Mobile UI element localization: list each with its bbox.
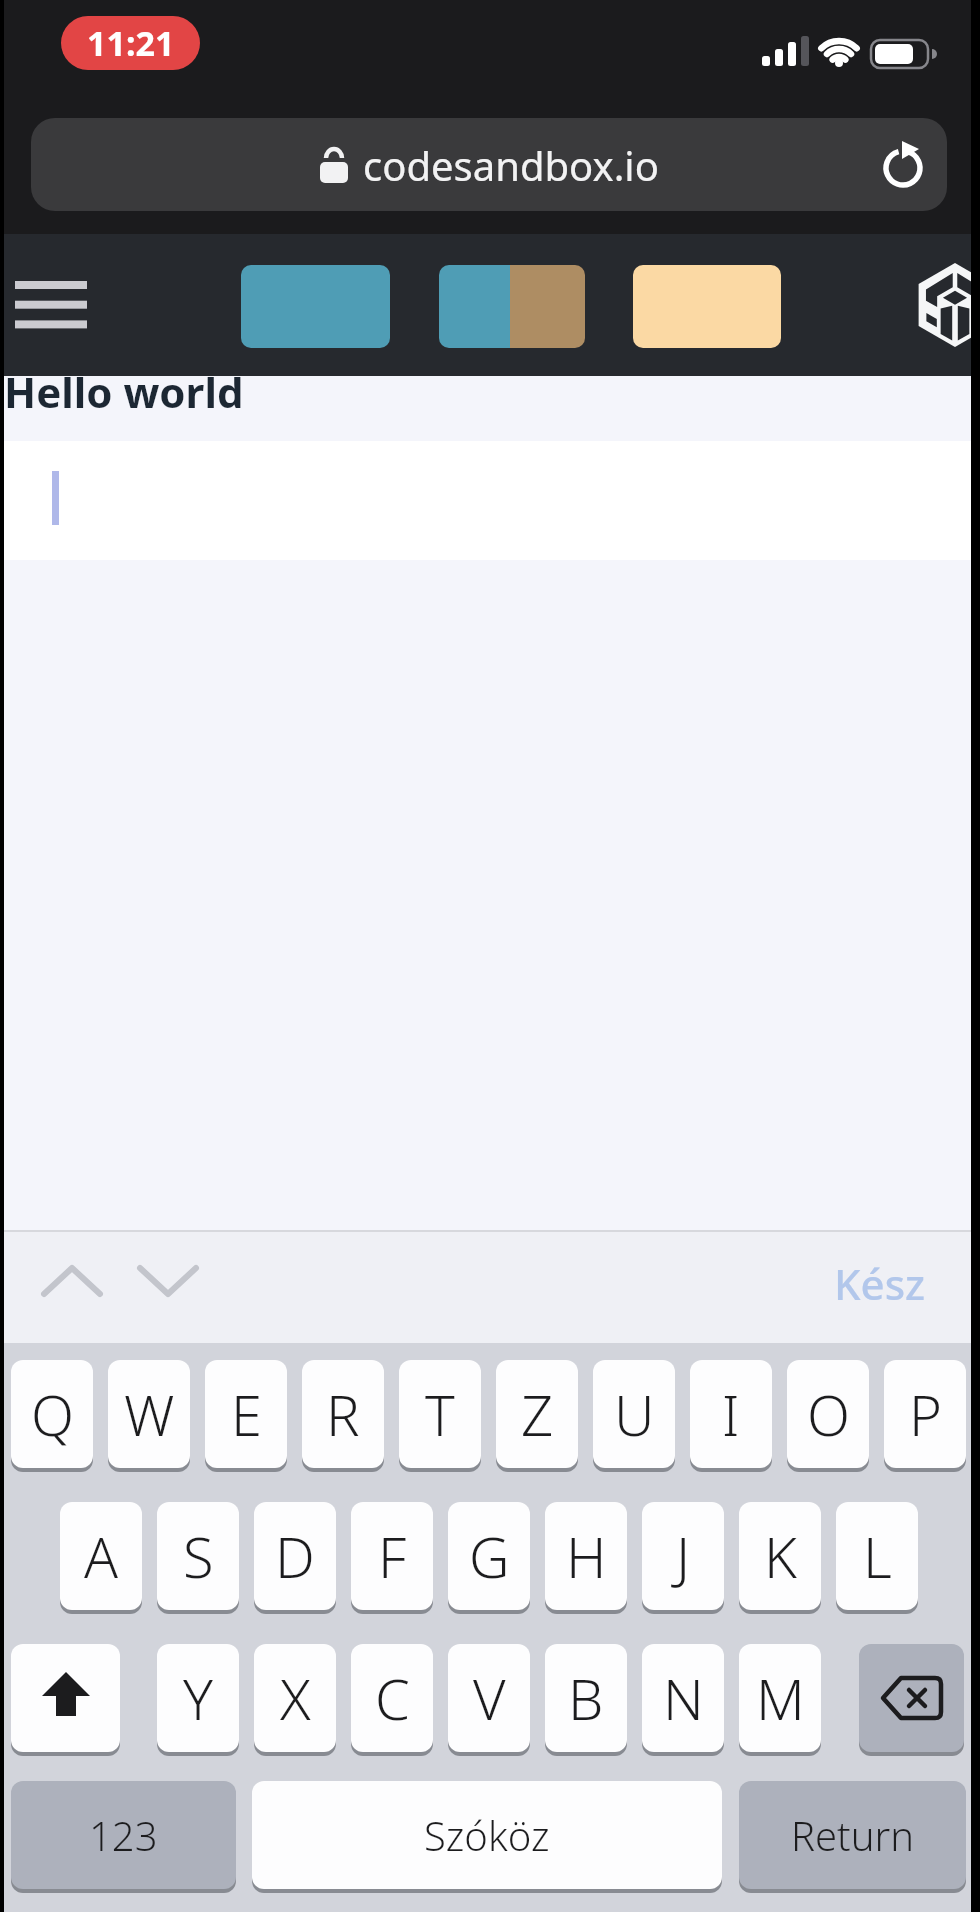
button[interactable] (241, 265, 390, 348)
staticText: 11:21 (87, 20, 175, 66)
button[interactable]: M (739, 1644, 821, 1752)
button[interactable] (633, 265, 781, 348)
button[interactable]: R (302, 1360, 384, 1468)
button[interactable]: N (642, 1644, 724, 1752)
button[interactable]: A (60, 1502, 142, 1610)
button[interactable]: U (593, 1360, 675, 1468)
staticText: X (280, 1660, 311, 1736)
staticText: T (425, 1376, 455, 1452)
button[interactable] (859, 1644, 964, 1752)
button[interactable]: Kész (812, 1248, 948, 1318)
staticText: I (722, 1376, 740, 1452)
button[interactable]: T (399, 1360, 481, 1468)
button[interactable]: D (254, 1502, 336, 1610)
button[interactable] (130, 1252, 206, 1312)
button[interactable] (878, 139, 930, 191)
staticText: R (326, 1376, 360, 1452)
button[interactable]: H (545, 1502, 627, 1610)
button[interactable] (913, 263, 980, 347)
button[interactable]: Return (739, 1781, 966, 1889)
button[interactable]: K (739, 1502, 821, 1610)
staticText: N (663, 1660, 704, 1736)
button[interactable]: 123 (11, 1781, 236, 1889)
button[interactable]: B (545, 1644, 627, 1752)
button[interactable] (0, 441, 971, 560)
button[interactable]: J (642, 1502, 724, 1610)
button[interactable]: S (157, 1502, 239, 1610)
staticText: W (124, 1376, 175, 1452)
button[interactable]: V (448, 1644, 530, 1752)
staticText: U (614, 1376, 655, 1452)
staticText: C (375, 1660, 410, 1736)
button[interactable] (439, 265, 585, 348)
button[interactable]: C (351, 1644, 433, 1752)
staticText: G (469, 1518, 510, 1594)
staticText: K (764, 1518, 797, 1594)
button[interactable]: X (254, 1644, 336, 1752)
staticText: M (756, 1660, 805, 1736)
button[interactable]: codesandbox.io (31, 118, 947, 211)
staticText: J (676, 1518, 691, 1594)
button[interactable]: W (108, 1360, 190, 1468)
staticText: P (909, 1376, 942, 1452)
button[interactable]: O (787, 1360, 869, 1468)
button[interactable]: Q (11, 1360, 93, 1468)
staticText: Hello world (4, 363, 244, 420)
button[interactable]: F (351, 1502, 433, 1610)
staticText: Q (31, 1376, 74, 1452)
button[interactable]: L (836, 1502, 918, 1610)
button[interactable]: Szóköz (252, 1781, 722, 1889)
button[interactable] (8, 272, 96, 338)
button[interactable]: I (690, 1360, 772, 1468)
staticText: B (568, 1660, 604, 1736)
button[interactable] (11, 1644, 120, 1752)
button[interactable]: P (884, 1360, 966, 1468)
button[interactable]: Z (496, 1360, 578, 1468)
staticText: Return (791, 1808, 914, 1862)
staticText: Szóköz (424, 1808, 550, 1862)
staticText: Kész (834, 1255, 926, 1312)
staticText: S (183, 1518, 214, 1594)
staticText: V (473, 1660, 506, 1736)
button[interactable]: Y (157, 1644, 239, 1752)
staticText: F (378, 1518, 407, 1594)
staticText: D (275, 1518, 315, 1594)
button[interactable]: E (205, 1360, 287, 1468)
button[interactable]: G (448, 1502, 530, 1610)
staticText: E (231, 1376, 262, 1452)
staticText: Z (521, 1376, 554, 1452)
staticText: H (566, 1518, 607, 1594)
staticText: A (84, 1518, 119, 1594)
staticText: O (807, 1376, 850, 1452)
staticText: 123 (89, 1808, 158, 1862)
button[interactable] (34, 1252, 110, 1312)
button[interactable]: 11:21 (61, 16, 200, 70)
staticText: L (863, 1518, 892, 1594)
staticText: Y (183, 1660, 213, 1736)
staticText: codesandbox.io (363, 138, 659, 192)
